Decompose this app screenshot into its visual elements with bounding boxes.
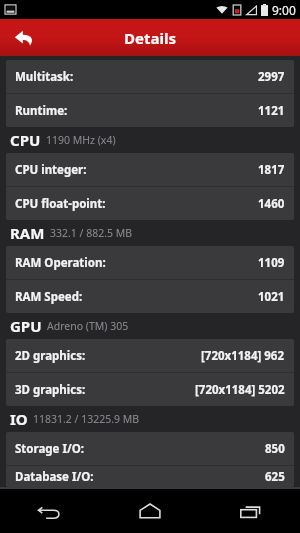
staticText: CPU — [10, 130, 41, 150]
staticText: 3D graphics: — [15, 382, 86, 398]
button[interactable]: CPU integer: — [6, 153, 294, 186]
staticText: CPU float-point: — [15, 196, 106, 212]
button[interactable]: Multitask: — [6, 60, 294, 93]
button[interactable]: Back — [0, 489, 100, 533]
staticText: 1190 MHz (x4) — [46, 133, 116, 147]
button[interactable]: Database I/O: — [6, 466, 294, 487]
button[interactable]: Recents — [200, 489, 300, 533]
staticText: 1817 — [258, 162, 285, 178]
button[interactable]: Back — [0, 19, 48, 56]
button[interactable]: Storage I/O: — [6, 432, 294, 465]
button[interactable]: RAM Speed: — [6, 280, 294, 313]
staticText: Storage I/O: — [15, 441, 85, 457]
staticText: Runtime: — [15, 103, 68, 119]
staticText: 1021 — [258, 289, 285, 305]
staticText: 1109 — [258, 255, 285, 271]
staticText: RAM Speed: — [15, 289, 83, 305]
staticText: RAM — [10, 223, 45, 243]
button[interactable]: Runtime: — [6, 94, 294, 127]
staticText: 1460 — [258, 196, 285, 212]
staticText: IO — [10, 409, 28, 429]
staticText: Details — [124, 28, 176, 48]
staticText: 1121 — [258, 103, 285, 119]
staticText: RAM Operation: — [15, 255, 106, 271]
staticText: 332.1 / 882.5 MB — [50, 226, 133, 240]
staticText: 2D graphics: — [15, 348, 86, 364]
staticText: [720x1184] 5202 — [195, 382, 285, 398]
staticText: Database I/O: — [15, 469, 94, 485]
staticText: Multitask: — [15, 69, 74, 85]
button[interactable]: 2D graphics: — [6, 339, 294, 372]
staticText: 850 — [265, 441, 285, 457]
staticText: GPU — [10, 316, 42, 336]
button[interactable]: CPU float-point: — [6, 187, 294, 220]
staticText: 625 — [265, 469, 285, 485]
button[interactable]: 3D graphics: — [6, 373, 294, 406]
staticText: CPU integer: — [15, 162, 87, 178]
staticText: 9:00 — [272, 2, 296, 18]
staticText: Adreno (TM) 305 — [47, 319, 129, 333]
button[interactable]: Home — [100, 489, 200, 533]
staticText: [720x1184] 962 — [201, 348, 285, 364]
staticText: 2997 — [258, 69, 285, 85]
button[interactable]: RAM Operation: — [6, 246, 294, 279]
staticText: 11831.2 / 13225.9 MB — [33, 412, 140, 426]
